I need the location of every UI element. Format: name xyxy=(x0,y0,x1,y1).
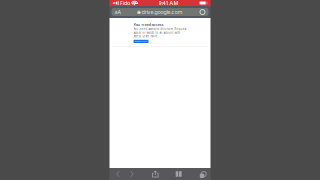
button[interactable]: Forward xyxy=(125,168,139,180)
staticText: 9:41 AM xyxy=(159,0,179,7)
button[interactable]: Share xyxy=(148,168,162,180)
button[interactable]: Request access xyxy=(133,40,148,43)
staticText: You need access xyxy=(133,22,163,27)
button[interactable]: Tabs xyxy=(195,168,209,180)
button[interactable]: Back xyxy=(111,168,125,180)
button[interactable]: Page settings xyxy=(113,8,122,16)
staticText: You need access to this item. Request ac… xyxy=(133,27,186,38)
staticText: Fido xyxy=(120,0,130,7)
button[interactable]: Bookmarks xyxy=(172,168,186,180)
staticText: aA xyxy=(114,8,120,16)
button[interactable]: Reload xyxy=(198,8,207,16)
staticText: drive.google.com xyxy=(141,8,182,16)
staticText: Request access xyxy=(134,40,147,42)
